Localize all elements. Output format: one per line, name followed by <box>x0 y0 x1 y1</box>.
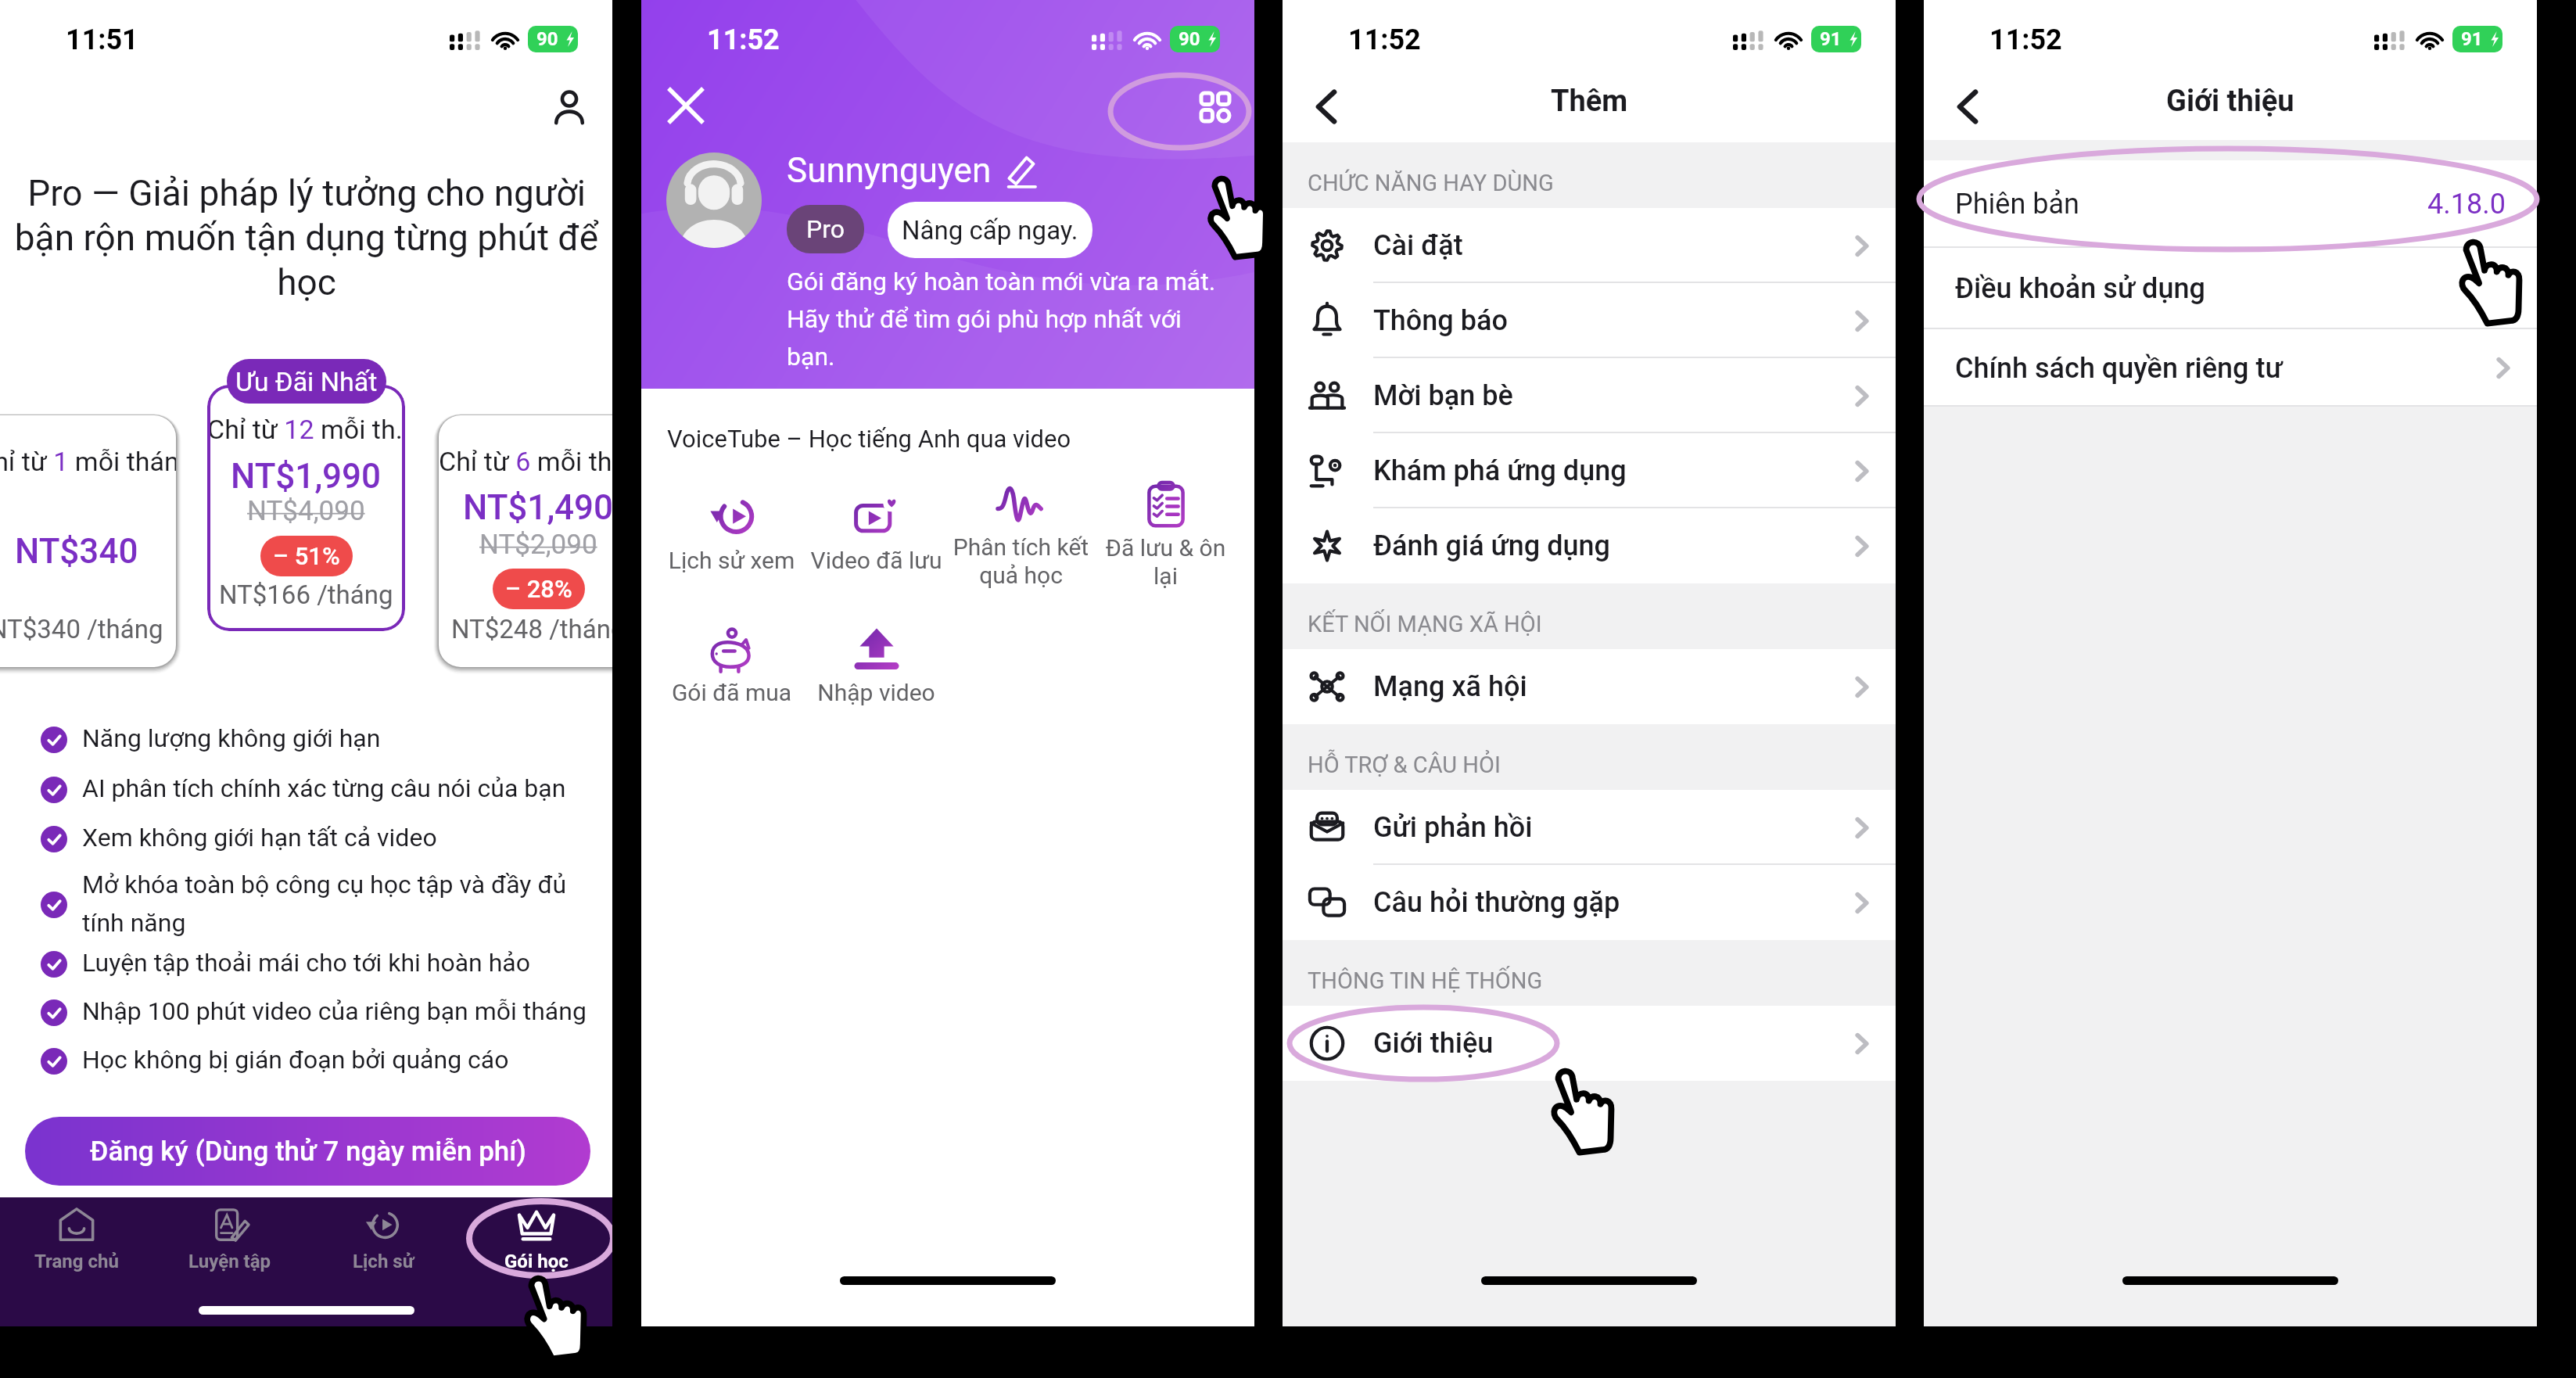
staticText: Nâng cấp ngay. <box>902 215 1078 246</box>
button[interactable]: Giới thiệu <box>1283 1006 1896 1081</box>
button[interactable]: Gói đã mua <box>659 626 804 751</box>
button[interactable]: Phiên bản <box>1924 160 2537 248</box>
staticText: Chỉ từ 6 mỗi tháng <box>439 446 612 477</box>
staticText: Khám phá ứng dụng <box>1373 454 1627 487</box>
staticText: NT$248 /tháng <box>451 614 612 644</box>
staticText: 4.18.0 <box>2427 188 2506 221</box>
button[interactable]: Đăng ký (Dùng thử 7 ngày miễn phí) <box>25 1117 590 1186</box>
button[interactable]: Nhập video <box>804 626 949 751</box>
button[interactable]: Mời bạn bè <box>1283 358 1896 433</box>
staticText: Ưu Đãi Nhất <box>235 366 378 397</box>
staticText: Gói đã mua <box>659 679 804 706</box>
staticText: KẾT NỐI MẠNG XÃ HỘI <box>1308 611 1542 637</box>
button[interactable]: Mạng xã hội <box>1283 649 1896 724</box>
staticText: NT$340 <box>15 531 138 572</box>
staticText: Pro <box>806 214 845 244</box>
button[interactable]: Lịch sử xem <box>659 494 804 619</box>
staticText: NT$2,090 <box>479 529 597 561</box>
staticText: NT$166 /tháng <box>219 580 393 610</box>
button[interactable]: Apps <box>1185 77 1246 138</box>
button[interactable]: Đánh giá ứng dụng <box>1283 508 1896 583</box>
staticText: 11:52 <box>1348 23 1421 56</box>
staticText: – 28% <box>505 575 572 603</box>
staticText: Học không bị gián đoạn bởi quảng cáo <box>82 1045 612 1075</box>
button[interactable]: Chỉ từ 1 mỗi tháng <box>0 415 176 667</box>
staticText: NT$1,990 <box>231 456 382 497</box>
staticText: 91 <box>2461 28 2483 50</box>
staticText: 11:52 <box>707 23 780 56</box>
staticText: NT$1,490 <box>463 487 612 528</box>
staticText: 91 <box>1820 28 1842 50</box>
button[interactable]: Câu hỏi thường gặp <box>1283 865 1896 940</box>
staticText: THÔNG TIN HỆ THỐNG <box>1308 967 1543 994</box>
staticText: CHỨC NĂNG HAY DÙNG <box>1308 170 1554 196</box>
staticText: Nhập video <box>804 679 949 706</box>
staticText: Chỉ từ 12 mỗi th… <box>207 414 405 445</box>
button[interactable]: Gói học <box>460 1197 612 1299</box>
staticText: Mạng xã hội <box>1373 670 1527 703</box>
staticText: Gói đăng ký hoàn toàn mới vừa ra mắt. Hã… <box>787 267 1225 371</box>
button[interactable]: Pro <box>787 205 864 253</box>
staticText: Thêm <box>1551 84 1628 119</box>
staticText: Đã lưu & ôn lại <box>1093 534 1238 590</box>
staticText: 90 <box>536 28 558 50</box>
button[interactable]: Edit name <box>1003 152 1043 192</box>
staticText: Chính sách quyền riêng tư <box>1955 352 2283 385</box>
staticText: Nhập 100 phút video của riêng bạn mỗi th… <box>82 996 612 1026</box>
staticText: HỖ TRỢ & CÂU HỎI <box>1308 752 1501 778</box>
staticText: Giới thiệu <box>2166 84 2294 119</box>
button[interactable]: Cài đặt <box>1283 208 1896 283</box>
button[interactable]: Khám phá ứng dụng <box>1283 433 1896 508</box>
button[interactable]: Điều khoản sử dụng <box>1924 248 2537 329</box>
staticText: Điều khoản sử dụng <box>1955 272 2205 305</box>
button[interactable]: Thông báo <box>1283 283 1896 358</box>
staticText: AI phân tích chính xác từng câu nói của … <box>82 773 612 803</box>
button[interactable]: Đã lưu & ôn lại <box>1093 483 1238 608</box>
staticText: Video đã lưu <box>804 547 949 574</box>
staticText: NT$4,090 <box>247 495 365 527</box>
staticText: Pro — Giải pháp lý tưởng cho người bận r… <box>6 172 607 303</box>
staticText: Năng lượng không giới hạn <box>82 723 612 753</box>
staticText: Luyện tập <box>188 1251 271 1272</box>
staticText: Lịch sử <box>353 1251 414 1272</box>
staticText: Sunnynguyen <box>787 150 992 191</box>
staticText: Mở khóa toàn bộ công cụ học tập và đầy đ… <box>82 870 612 938</box>
staticText: Phiên bản <box>1955 188 2079 221</box>
staticText: – 51% <box>273 542 340 570</box>
button[interactable]: Chính sách quyền riêng tư <box>1924 329 2537 407</box>
button[interactable]: Nâng cấp ngay. <box>888 202 1092 258</box>
button[interactable]: Video đã lưu <box>804 494 949 619</box>
button[interactable]: Back <box>1295 75 1358 138</box>
staticText: Lịch sử xem <box>659 547 804 574</box>
staticText: Gói học <box>504 1251 569 1272</box>
button[interactable]: Trang chủ <box>0 1197 153 1299</box>
staticText: Chỉ từ 1 mỗi tháng <box>0 446 176 477</box>
button[interactable]: Chỉ từ 6 mỗi tháng <box>439 415 612 667</box>
staticText: Cài đặt <box>1373 229 1463 262</box>
button[interactable]: Back <box>1936 75 1999 138</box>
staticText: 90 <box>1179 28 1200 50</box>
button[interactable]: Luyện tập <box>153 1197 307 1299</box>
button[interactable]: Lịch sử <box>307 1197 460 1299</box>
staticText: Câu hỏi thường gặp <box>1373 886 1620 919</box>
staticText: Gửi phản hồi <box>1373 811 1533 844</box>
staticText: Đăng ký (Dùng thử 7 ngày miễn phí) <box>90 1136 526 1168</box>
staticText: VoiceTube – Học tiếng Anh qua video <box>667 425 1071 453</box>
staticText: Thông báo <box>1373 304 1509 337</box>
button[interactable]: Account <box>538 76 601 138</box>
staticText: Luyện tập thoải mái cho tới khi hoàn hảo <box>82 948 612 978</box>
staticText: NT$340 /tháng <box>0 614 163 644</box>
staticText: Phân tích kết quả học <box>949 533 1093 589</box>
staticText: 11:52 <box>1989 23 2062 56</box>
button[interactable]: Close <box>655 75 716 136</box>
staticText: Giới thiệu <box>1373 1027 1494 1060</box>
button[interactable]: Gửi phản hồi <box>1283 790 1896 865</box>
staticText: Trang chủ <box>34 1251 119 1272</box>
staticText: Đánh giá ứng dụng <box>1373 529 1611 562</box>
staticText: 11:51 <box>66 23 138 56</box>
staticText: Mời bạn bè <box>1373 379 1513 412</box>
button[interactable]: Chỉ từ 12 mỗi th… <box>207 385 405 631</box>
staticText: Xem không giới hạn tất cả video <box>82 823 612 852</box>
button[interactable]: Phân tích kết quả học <box>949 483 1093 608</box>
